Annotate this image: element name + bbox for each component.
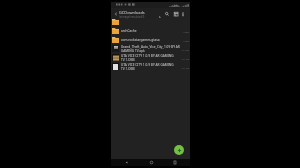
staticText: GCDownloads — [119, 10, 145, 15]
button[interactable] — [111, 17, 190, 26]
button[interactable]: Search — [163, 8, 171, 19]
staticText: 1.01 GB — [181, 58, 189, 61]
button[interactable]: More options — [179, 8, 187, 19]
staticText: GTA VICE CITY 1.0.9 BY AR GAMING TV.1.OB… — [121, 54, 174, 62]
staticText: com.rockstargames.gtasa — [121, 38, 160, 42]
button[interactable]: Home — [142, 159, 160, 166]
staticText: GTA VICE CITY 1.0.9 BY AR GAMING TV.1.OB… — [121, 63, 174, 71]
staticText: 1 item — [182, 31, 189, 34]
staticText: archCache — [121, 29, 137, 33]
button[interactable]: com.rockstargames.gtasa — [111, 35, 190, 44]
button[interactable]: Add — [174, 145, 184, 155]
button[interactable]: Recent apps — [166, 159, 184, 166]
button[interactable]: Back — [117, 159, 135, 166]
button[interactable]: Navigate up — [112, 8, 119, 19]
staticText: Grand_Theft_Auto_Vice_City_1.09 BY AR GA… — [121, 45, 180, 53]
staticText: 1.01 GB — [181, 67, 189, 70]
button[interactable]: Change view — [172, 8, 180, 19]
button[interactable]: Grand_Theft_Auto_Vice_City_1.09 BY AR GA… — [111, 44, 190, 53]
staticText: 1.44 GB — [181, 49, 189, 52]
button[interactable]: GTA VICE CITY 1.0.9 BY AR GAMING TV.1.OB… — [111, 53, 190, 62]
button[interactable]: archCache — [111, 26, 190, 35]
staticText: /storage/emulated/0 — [119, 15, 145, 19]
button[interactable]: GTA VICE CITY 1.0.9 BY AR GAMING TV.1.OB… — [111, 62, 190, 71]
staticText: 1 item — [182, 40, 189, 43]
